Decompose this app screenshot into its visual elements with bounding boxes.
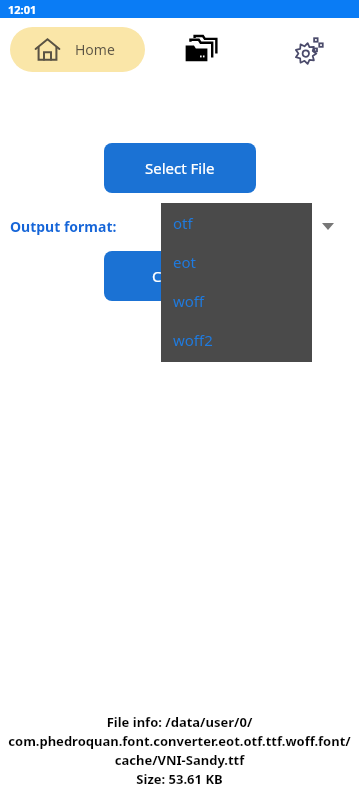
button[interactable]: Settings <box>288 30 330 72</box>
staticText: Select File <box>145 158 215 178</box>
button[interactable]: Files <box>180 30 222 72</box>
staticText: woff2 <box>173 330 213 350</box>
staticText: eot <box>173 252 196 272</box>
button[interactable]: woff <box>161 281 312 320</box>
button[interactable]: woff2 <box>161 320 312 359</box>
button[interactable]: otf <box>161 203 312 242</box>
button[interactable]: Convert <box>104 251 256 301</box>
staticText: Output format: <box>10 217 117 236</box>
staticText: 12:01 <box>8 2 37 17</box>
button[interactable]: Open format menu <box>314 212 342 240</box>
button[interactable]: Home <box>10 27 145 72</box>
staticText: woff <box>173 291 205 311</box>
staticText: File info: /data/user/0/ com.phedroquan.… <box>8 713 351 788</box>
staticText: Convert <box>152 266 208 286</box>
button[interactable]: Select File <box>104 143 256 193</box>
staticText: Home <box>75 40 115 59</box>
button[interactable]: eot <box>161 242 312 281</box>
staticText: otf <box>173 213 193 233</box>
